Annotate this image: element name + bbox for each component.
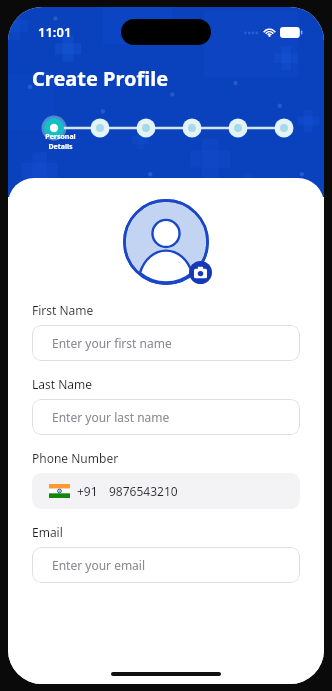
staticText: Enter your first name — [52, 335, 172, 351]
button[interactable]: Enter your first name — [32, 325, 300, 361]
button[interactable]: Change profile photo — [189, 261, 212, 284]
staticText: 9876543210 — [109, 483, 178, 499]
staticText: First Name — [32, 302, 94, 318]
button[interactable]: Enter your last name — [32, 399, 300, 435]
staticText: Phone Number — [32, 450, 119, 466]
button[interactable]: Enter your email — [32, 547, 300, 583]
staticText: Last Name — [32, 376, 93, 392]
staticText: Enter your email — [52, 557, 146, 573]
staticText: Email — [32, 524, 63, 540]
staticText: Personal — [45, 132, 76, 142]
button[interactable]: +91 — [32, 473, 300, 509]
staticText: +91 — [77, 483, 98, 499]
staticText: Enter your last name — [52, 409, 170, 425]
staticText: Create Profile — [32, 65, 169, 92]
staticText: 11:01 — [38, 23, 72, 41]
staticText: Details — [48, 142, 73, 152]
